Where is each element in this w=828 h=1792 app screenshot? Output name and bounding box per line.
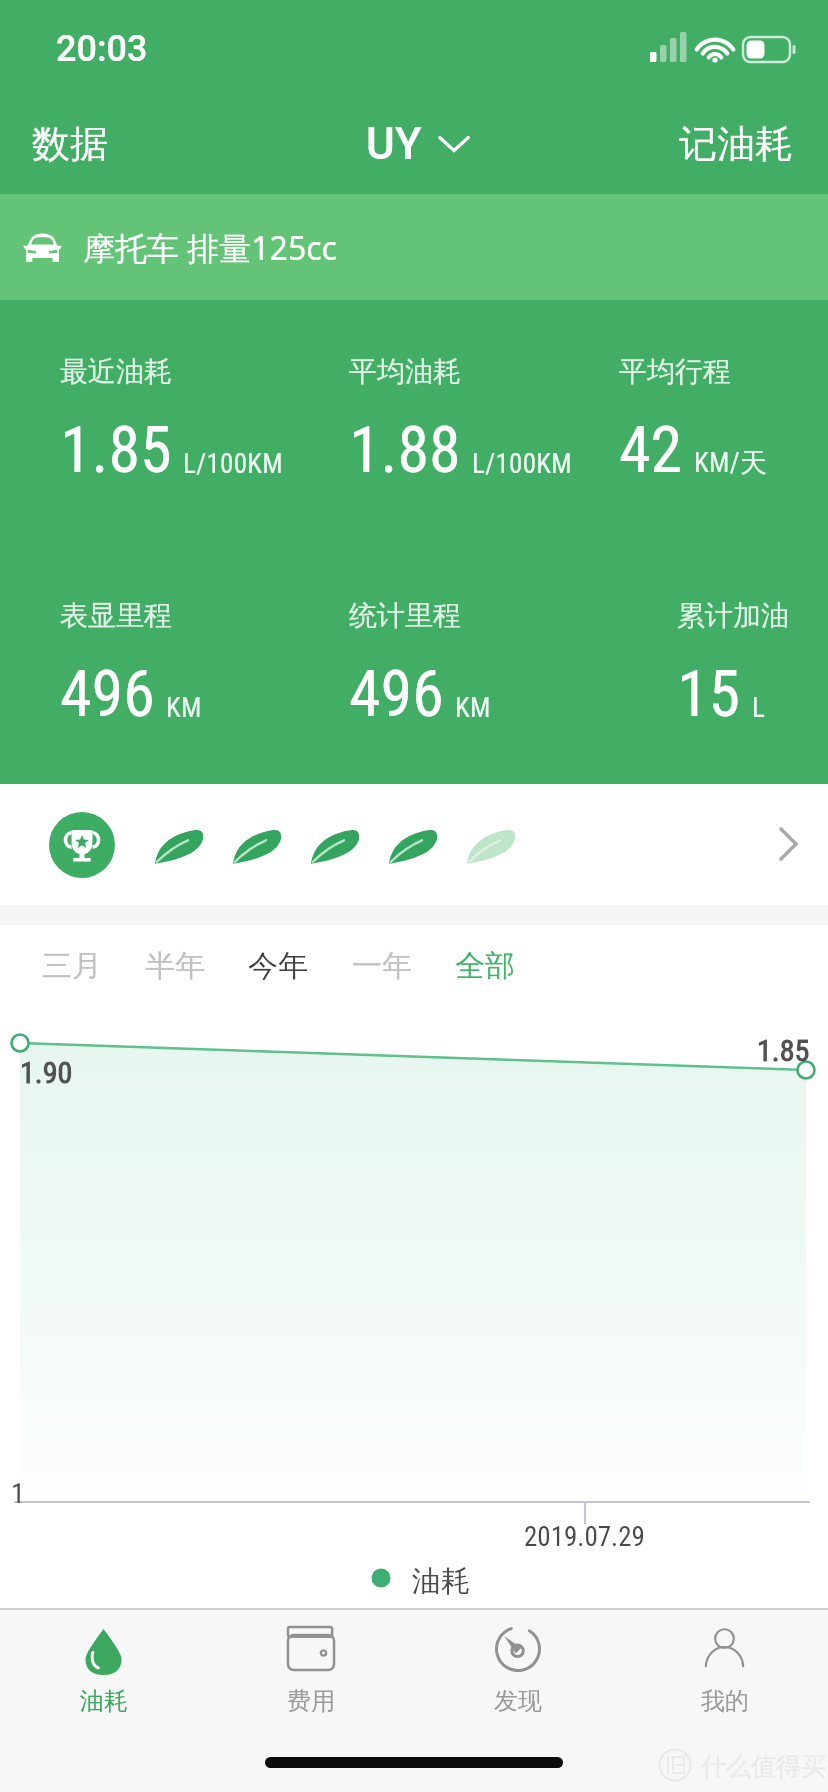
staticText: 496 xyxy=(60,657,155,732)
staticText: 1 xyxy=(11,1477,25,1510)
staticText: KM xyxy=(455,692,491,724)
staticText: UY xyxy=(366,118,422,170)
staticText: 496 xyxy=(349,657,444,732)
staticText: 摩托车 排量125cc xyxy=(83,226,337,270)
button[interactable]: 费用 xyxy=(207,1608,414,1748)
staticText: 费用 xyxy=(287,1686,335,1716)
button[interactable]: 摩托车 排量125cc xyxy=(0,194,828,300)
staticText: 15 xyxy=(677,657,741,732)
staticText: 油耗 xyxy=(412,1563,470,1600)
staticText: 42 xyxy=(619,413,683,488)
staticText: KM xyxy=(166,692,202,724)
staticText: 平均油耗 xyxy=(349,354,461,389)
button[interactable]: 油耗 xyxy=(0,1608,207,1748)
button[interactable]: 三月 xyxy=(26,933,118,999)
staticText: 2019.07.29 xyxy=(524,1521,645,1553)
staticText: L/100KM xyxy=(472,448,573,480)
staticText: 1.88 xyxy=(349,413,461,488)
staticText: 表显里程 xyxy=(60,598,172,633)
button[interactable]: 记油耗 xyxy=(667,108,805,180)
staticText: 累计加油 xyxy=(677,598,789,633)
staticText: L/100KM xyxy=(183,448,284,480)
staticText: 数据 xyxy=(32,120,108,168)
button[interactable]: 半年 xyxy=(129,933,221,999)
button[interactable]: 全部 xyxy=(439,933,531,999)
button[interactable]: UY xyxy=(358,110,478,178)
button[interactable]: 数据 xyxy=(20,108,120,180)
staticText: 1.85 xyxy=(60,413,172,488)
staticText: 统计里程 xyxy=(349,598,461,633)
button[interactable]: More badges xyxy=(778,826,800,862)
button[interactable]: More badges xyxy=(0,784,828,905)
staticText: 20:03 xyxy=(56,28,148,70)
staticText: 我的 xyxy=(701,1686,749,1716)
staticText: 一年 xyxy=(352,947,412,985)
staticText: 记油耗 xyxy=(679,120,793,168)
button[interactable]: 一年 xyxy=(336,933,428,999)
staticText: 今年 xyxy=(248,947,308,985)
staticText: 全部 xyxy=(455,947,515,985)
button[interactable]: 今年 xyxy=(232,933,324,999)
button[interactable]: 我的 xyxy=(621,1608,828,1748)
button[interactable]: 发现 xyxy=(414,1608,621,1748)
staticText: 发现 xyxy=(494,1686,542,1716)
staticText: 1.85 xyxy=(757,1033,810,1068)
staticText: 最近油耗 xyxy=(60,354,172,389)
staticText: KM/天 xyxy=(694,446,768,480)
staticText: 油耗 xyxy=(80,1686,128,1716)
staticText: 1.90 xyxy=(20,1055,73,1090)
staticText: 半年 xyxy=(145,947,205,985)
staticText: 平均行程 xyxy=(619,354,731,389)
staticText: 什么值得买 xyxy=(701,1751,826,1782)
staticText: 三月 xyxy=(42,947,102,985)
staticText: L xyxy=(752,692,766,724)
